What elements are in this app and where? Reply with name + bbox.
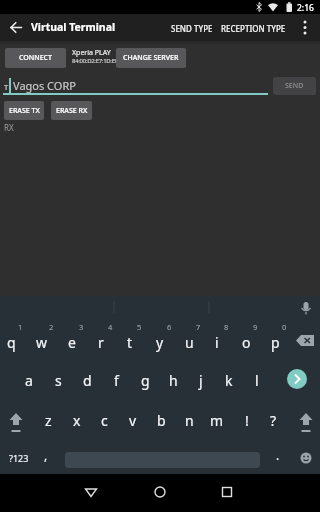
staticText: 5: [137, 322, 142, 332]
button[interactable]: [295, 411, 317, 437]
button[interactable]: o: [233, 330, 259, 354]
button[interactable]: i: [204, 330, 230, 354]
staticText: Xperia PLAY: [72, 48, 111, 58]
staticText: ,: [44, 447, 48, 463]
staticText: Virtual Terminal: [31, 20, 116, 34]
button[interactable]: ERASE RX: [51, 101, 92, 120]
staticText: !: [245, 411, 249, 430]
staticText: v: [129, 411, 137, 430]
staticText: y: [156, 333, 164, 352]
button[interactable]: l: [244, 368, 270, 392]
button[interactable]: ERASE TX: [4, 101, 44, 120]
staticText: 7: [196, 322, 201, 332]
button[interactable]: y: [147, 330, 173, 354]
staticText: 4: [108, 322, 113, 332]
button[interactable]: j: [188, 368, 214, 392]
staticText: s: [55, 371, 62, 390]
staticText: 2:16: [297, 2, 314, 14]
button[interactable]: f: [103, 368, 129, 392]
staticText: g: [141, 371, 150, 390]
button[interactable]: [287, 369, 307, 389]
staticText: ERASE RX: [56, 106, 88, 116]
button[interactable]: [293, 334, 317, 348]
staticText: RECEPTION TYPE: [221, 23, 286, 34]
staticText: w: [36, 333, 48, 352]
staticText: a: [25, 371, 33, 390]
staticText: f: [114, 371, 119, 390]
button[interactable]: g: [132, 368, 158, 392]
button[interactable]: [296, 17, 314, 38]
button[interactable]: [212, 477, 242, 507]
button[interactable]: d: [74, 368, 100, 392]
button[interactable]: k: [216, 368, 242, 392]
button[interactable]: SEND: [273, 77, 316, 95]
button[interactable]: !: [234, 408, 260, 432]
button[interactable]: w: [29, 330, 55, 354]
staticText: SEND: [285, 81, 304, 91]
staticText: n: [185, 411, 194, 430]
staticText: ERASE TX: [9, 106, 40, 116]
staticText: CHANGE SERVER: [123, 53, 179, 63]
button[interactable]: .: [268, 443, 288, 467]
staticText: RX: [4, 122, 14, 133]
button[interactable]: [76, 477, 106, 507]
button[interactable]: m: [204, 408, 230, 432]
staticText: o: [242, 333, 251, 352]
button[interactable]: t: [117, 330, 143, 354]
button[interactable]: n: [176, 408, 202, 432]
staticText: e: [68, 333, 76, 352]
staticText: .: [276, 447, 280, 463]
button[interactable]: b: [148, 408, 174, 432]
staticText: k: [225, 371, 233, 390]
staticText: Vagos CORP: [13, 78, 76, 93]
staticText: b: [157, 411, 166, 430]
button[interactable]: v: [120, 408, 146, 432]
staticText: t: [127, 333, 133, 352]
button[interactable]: [6, 17, 27, 38]
button[interactable]: CONNECT: [5, 48, 66, 68]
staticText: p: [271, 333, 280, 352]
button[interactable]: [296, 298, 316, 318]
staticText: d: [83, 371, 92, 390]
staticText: ?123: [9, 452, 29, 464]
staticText: m: [210, 411, 224, 430]
button[interactable]: z: [35, 408, 61, 432]
button[interactable]: ?: [260, 408, 286, 432]
staticText: CONNECT: [19, 53, 52, 63]
staticText: ?: [270, 411, 277, 430]
button[interactable]: p: [262, 330, 288, 354]
button[interactable]: [298, 450, 314, 466]
staticText: 9: [253, 322, 258, 332]
button[interactable]: CHANGE SERVER: [116, 48, 186, 68]
button[interactable]: e: [59, 330, 85, 354]
staticText: SEND TYPE: [171, 23, 213, 34]
staticText: 84:00:D2:E7:1D:E0: [72, 57, 118, 65]
staticText: z: [45, 411, 52, 430]
button[interactable]: [145, 477, 175, 507]
button[interactable]: SEND TYPE: [164, 16, 220, 40]
staticText: 8: [224, 322, 229, 332]
button[interactable]: x: [64, 408, 90, 432]
button[interactable]: a: [16, 368, 42, 392]
staticText: q: [7, 333, 16, 352]
button[interactable]: q: [0, 330, 24, 354]
button[interactable]: r: [88, 330, 114, 354]
button[interactable]: RECEPTION TYPE: [213, 16, 293, 40]
button[interactable]: [5, 411, 27, 437]
staticText: 1: [18, 322, 23, 332]
button[interactable]: T: [3, 77, 268, 94]
staticText: r: [98, 333, 104, 352]
button[interactable]: ,: [36, 443, 56, 467]
button[interactable]: ?123: [2, 446, 36, 470]
staticText: l: [255, 371, 259, 390]
staticText: 6: [167, 322, 172, 332]
button[interactable]: h: [160, 368, 186, 392]
staticText: 0: [282, 322, 287, 332]
button[interactable]: c: [91, 408, 117, 432]
staticText: c: [101, 411, 108, 430]
staticText: x: [73, 411, 81, 430]
button[interactable]: s: [45, 368, 71, 392]
staticText: j: [199, 371, 203, 390]
button[interactable]: u: [176, 330, 202, 354]
